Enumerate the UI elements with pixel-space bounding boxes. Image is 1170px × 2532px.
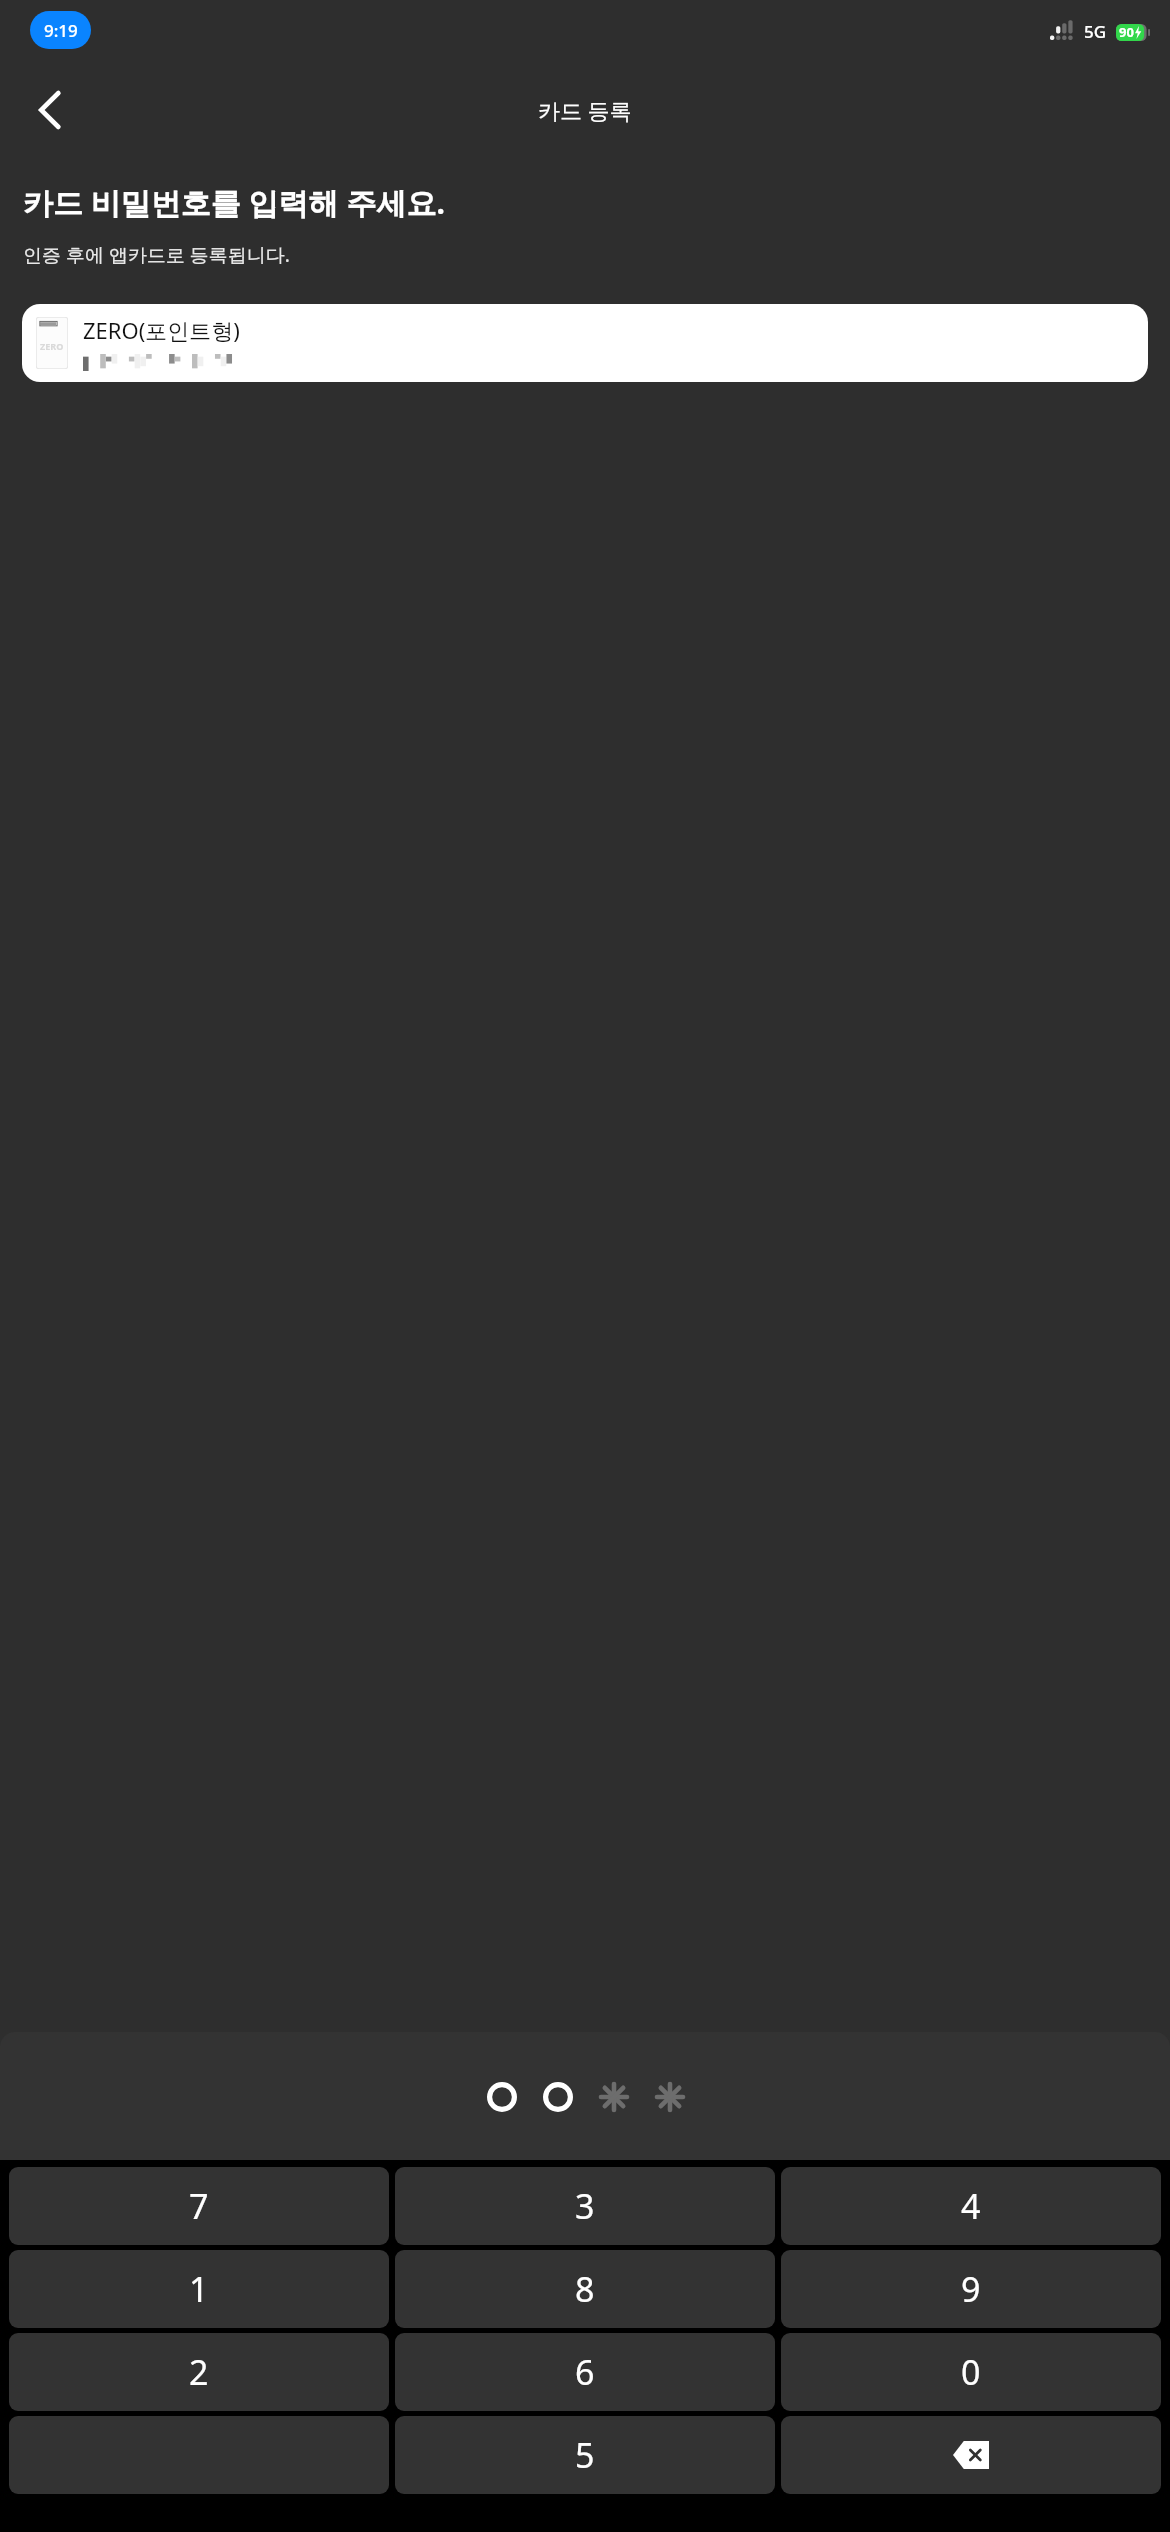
button[interactable]: 5 — [395, 2416, 775, 2494]
staticText: 2 — [189, 2349, 209, 2395]
button[interactable]: Backspace — [781, 2416, 1161, 2494]
staticText: 9:19 — [44, 19, 78, 42]
staticText: 5G — [1084, 20, 1107, 43]
button[interactable]: ZERO — [22, 304, 1148, 382]
button[interactable]: 9 — [781, 2250, 1161, 2328]
staticText: 5 — [575, 2432, 595, 2478]
staticText: 카드 등록 — [538, 95, 632, 125]
button[interactable]: Back — [14, 74, 86, 146]
staticText: 1 — [189, 2266, 209, 2312]
staticText: 6 — [575, 2349, 595, 2395]
staticText: 카드 비밀번호를 입력해 주세요. — [23, 182, 445, 223]
button[interactable]: 3 — [395, 2167, 775, 2245]
button[interactable]: 8 — [395, 2250, 775, 2328]
button[interactable]: 4 — [781, 2167, 1161, 2245]
staticText: 8 — [575, 2266, 595, 2312]
button[interactable]: 6 — [395, 2333, 775, 2411]
staticText: 3 — [575, 2183, 595, 2229]
staticText: ZERO(포인트형) — [83, 315, 240, 345]
button[interactable]: 0 — [781, 2333, 1161, 2411]
button[interactable]: 7 — [9, 2167, 389, 2245]
staticText: 인증 후에 앱카드로 등록됩니다. — [23, 242, 290, 268]
staticText: 9 — [961, 2266, 981, 2312]
staticText: 7 — [189, 2183, 209, 2229]
staticText: ZERO — [40, 340, 64, 352]
button[interactable]: 1 — [9, 2250, 389, 2328]
staticText: 90 — [1119, 23, 1134, 41]
staticText: 4 — [961, 2183, 981, 2229]
staticText: 0 — [961, 2349, 981, 2395]
button[interactable]: 2 — [9, 2333, 389, 2411]
